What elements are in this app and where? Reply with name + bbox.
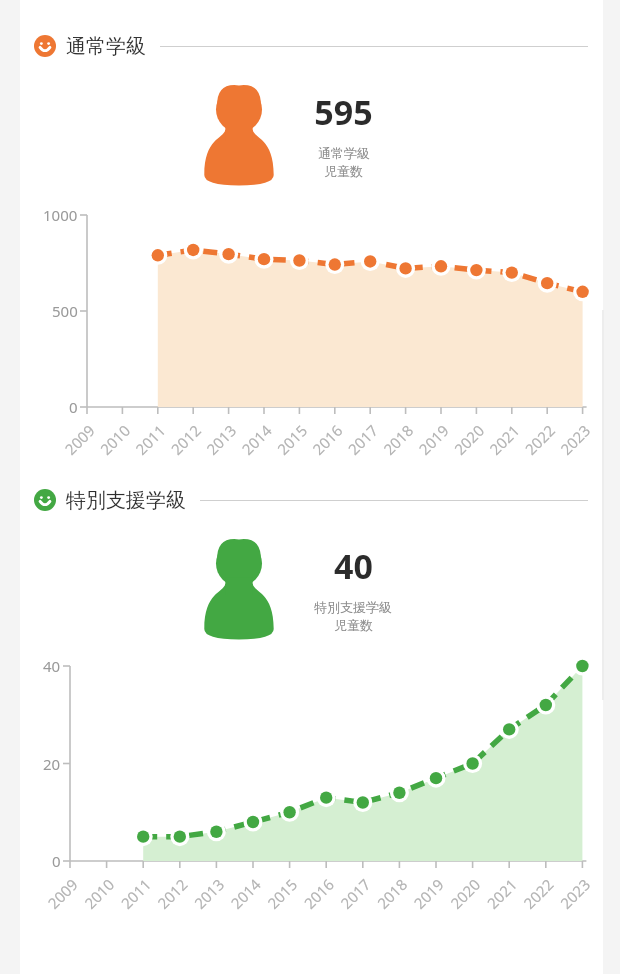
- staticText: 特別支援学級: [314, 599, 392, 615]
- staticText: 特別支援学級: [66, 488, 186, 513]
- staticText: 通常学級: [66, 34, 146, 59]
- staticText: 通常学級: [318, 145, 370, 161]
- button[interactable]: カテゴリ: [34, 480, 588, 520]
- button[interactable]: [0, 200, 620, 462]
- button[interactable]: 人数アイコン: [0, 82, 620, 186]
- button[interactable]: 人数アイコン: [0, 536, 620, 640]
- other: 人数アイコン: [200, 82, 278, 186]
- button[interactable]: カテゴリ: [34, 26, 588, 66]
- other: カテゴリ: [34, 489, 56, 511]
- other: カテゴリ: [34, 35, 56, 57]
- other: 人数アイコン: [200, 536, 278, 640]
- button[interactable]: [0, 654, 620, 916]
- staticText: 児童数: [324, 163, 363, 179]
- staticText: 児童数: [334, 617, 373, 633]
- staticText: 40: [334, 543, 373, 589]
- staticText: 595: [314, 89, 373, 135]
